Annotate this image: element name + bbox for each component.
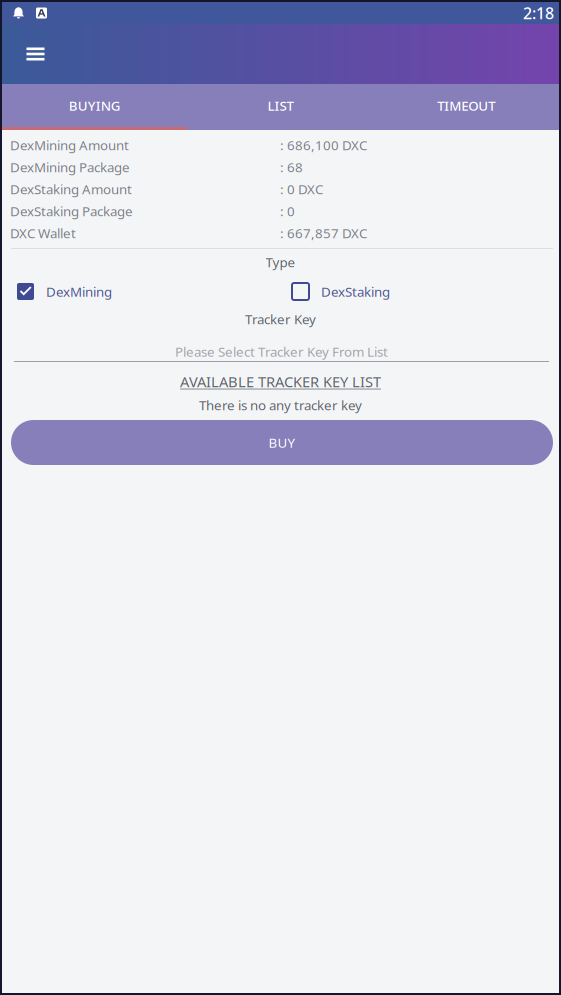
staticText: : 0 — [280, 202, 295, 220]
staticText: : 686,100 DXC — [280, 136, 367, 154]
staticText: Tracker Key — [245, 310, 316, 328]
staticText: BUYING — [69, 97, 121, 114]
staticText: Please Select Tracker Key From List — [175, 343, 388, 360]
button[interactable]: AVAILABLE TRACKER KEY LIST — [2, 375, 559, 388]
staticText: AVAILABLE TRACKER KEY LIST — [180, 372, 381, 391]
staticText: DXC Wallet — [10, 224, 76, 242]
staticText: There is no any tracker key — [199, 396, 362, 414]
staticText: 2:18 — [523, 2, 554, 24]
staticText: DexStaking Package — [10, 202, 133, 220]
staticText: DexMining Package — [10, 158, 130, 176]
button[interactable]: BUYING — [2, 84, 188, 127]
button[interactable]: Please Select Tracker Key From List — [2, 345, 559, 362]
button[interactable]: BUY — [11, 420, 553, 465]
staticText: : 667,857 DXC — [280, 224, 367, 242]
staticText: DexMining Amount — [10, 136, 129, 154]
button[interactable]: DexMining — [17, 283, 112, 300]
staticText: BUY — [268, 434, 295, 451]
staticText: DexStaking — [321, 283, 390, 300]
staticText: : 0 DXC — [280, 180, 323, 198]
button[interactable]: DexStaking — [292, 283, 390, 300]
button[interactable]: TIMEOUT — [373, 84, 559, 127]
staticText: Type — [265, 253, 295, 271]
button[interactable]: Menu — [15, 34, 55, 74]
staticText: TIMEOUT — [437, 97, 495, 114]
staticText: DexStaking Amount — [10, 180, 132, 198]
button[interactable]: LIST — [188, 84, 373, 127]
staticText: LIST — [267, 97, 293, 114]
staticText: DexMining — [46, 283, 112, 300]
staticText: : 68 — [280, 158, 303, 176]
